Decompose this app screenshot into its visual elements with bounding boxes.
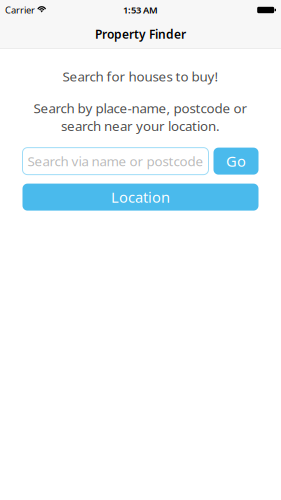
- staticText: Search by place-name, postcode or: [33, 99, 247, 117]
- staticText: Search for houses to buy!: [62, 67, 218, 85]
- staticText: 1:53 AM: [123, 4, 158, 16]
- button[interactable]: Go: [213, 148, 258, 175]
- staticText: Property Finder: [95, 26, 186, 42]
- staticText: Carrier: [5, 4, 35, 16]
- button[interactable]: Location: [22, 184, 258, 211]
- button[interactable]: Search via name or postcode: [22, 148, 208, 175]
- staticText: Go: [226, 151, 246, 171]
- staticText: Search via name or postcode: [27, 152, 203, 170]
- staticText: search near your location.: [61, 117, 220, 135]
- staticText: Location: [111, 187, 170, 207]
